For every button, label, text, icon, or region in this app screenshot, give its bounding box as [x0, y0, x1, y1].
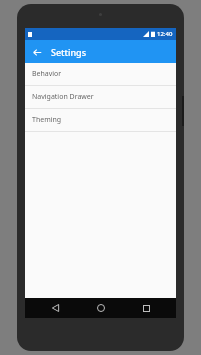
button[interactable]: Recent apps — [131, 298, 161, 318]
staticText: 12:40 — [157, 30, 173, 38]
button[interactable]: Home — [86, 298, 116, 318]
staticText: Navigation Drawer — [32, 92, 94, 102]
button[interactable]: Back — [40, 298, 70, 318]
button[interactable]: Navigation Drawer — [25, 86, 176, 108]
staticText: Behavior — [32, 69, 62, 79]
staticText: Settings — [51, 46, 87, 58]
button[interactable]: Theming — [25, 109, 176, 131]
staticText: Theming — [32, 115, 62, 125]
button[interactable]: Behavior — [25, 63, 176, 85]
button[interactable]: Back — [29, 44, 45, 60]
